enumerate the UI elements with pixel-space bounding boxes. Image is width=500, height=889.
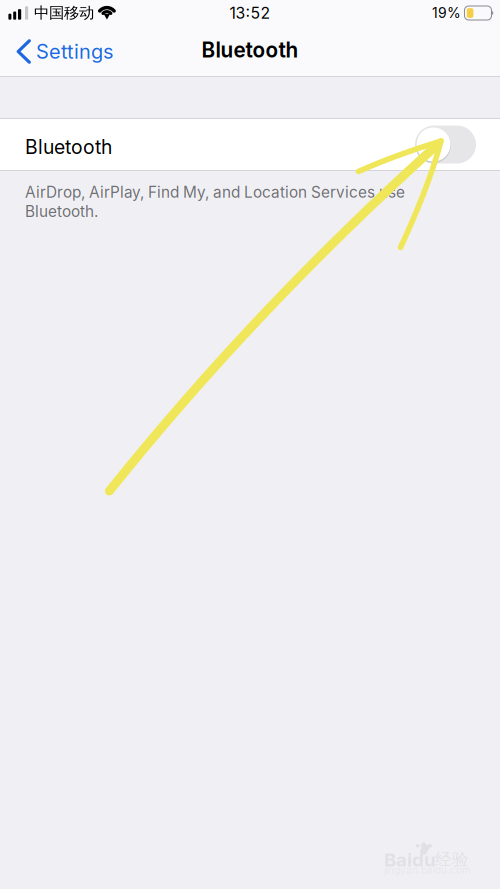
- staticText: 中国移动: [34, 3, 94, 23]
- staticText: Bluetooth: [201, 37, 298, 62]
- staticText: jingyan.baidu.com: [384, 864, 471, 876]
- staticText: 经验: [435, 849, 469, 870]
- staticText: Bluetooth: [25, 135, 112, 159]
- button[interactable]: Bluetooth: [0, 118, 500, 171]
- button[interactable]: Settings: [0, 29, 125, 73]
- staticText: AirDrop, AirPlay, Find My, and Location …: [25, 183, 405, 221]
- staticText: Baidu: [384, 848, 436, 871]
- staticText: 13:52: [229, 3, 270, 22]
- staticText: Settings: [36, 39, 113, 64]
- staticText: 19%: [432, 4, 461, 21]
